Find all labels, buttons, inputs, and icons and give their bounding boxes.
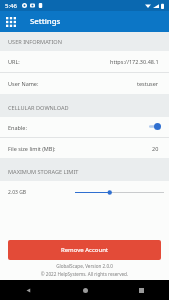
staticText: MAXIMUM STORAGE LIMIT	[8, 168, 79, 176]
button[interactable]: Back	[0, 280, 57, 300]
staticText: Enable:	[8, 124, 27, 131]
staticText: CELLULAR DOWNLOAD	[8, 104, 69, 112]
button[interactable]: Recent apps	[113, 280, 169, 300]
button[interactable]: Storage limit slider	[75, 181, 164, 203]
staticText: 2.03 GB	[8, 189, 27, 196]
staticText: File size limit (MB):	[8, 145, 56, 152]
button[interactable]: URL:	[0, 51, 169, 72]
staticText: 5:46	[5, 2, 17, 10]
button[interactable]: Enable:	[0, 117, 169, 137]
button[interactable]: File size limit (MB):	[0, 138, 169, 158]
staticText: testuser	[137, 80, 159, 87]
staticText: © 2022 HelpSystems. All rights reserved.	[0, 271, 169, 277]
button[interactable]: Home	[57, 280, 113, 300]
staticText: GlobalScape, Version 2.0.0	[0, 263, 169, 269]
button[interactable]: Apps menu	[0, 11, 21, 32]
staticText: Remove Account	[61, 246, 109, 254]
staticText: Settings	[30, 16, 61, 27]
button[interactable]: User Name:	[0, 73, 169, 94]
staticText: 20	[152, 145, 159, 152]
staticText: URL:	[8, 58, 20, 65]
staticText: User Name:	[8, 80, 39, 87]
staticText: USER INFORMATION	[8, 38, 62, 46]
staticText: https://172.30.48.1	[110, 58, 159, 65]
button[interactable]: Remove Account	[8, 240, 161, 260]
